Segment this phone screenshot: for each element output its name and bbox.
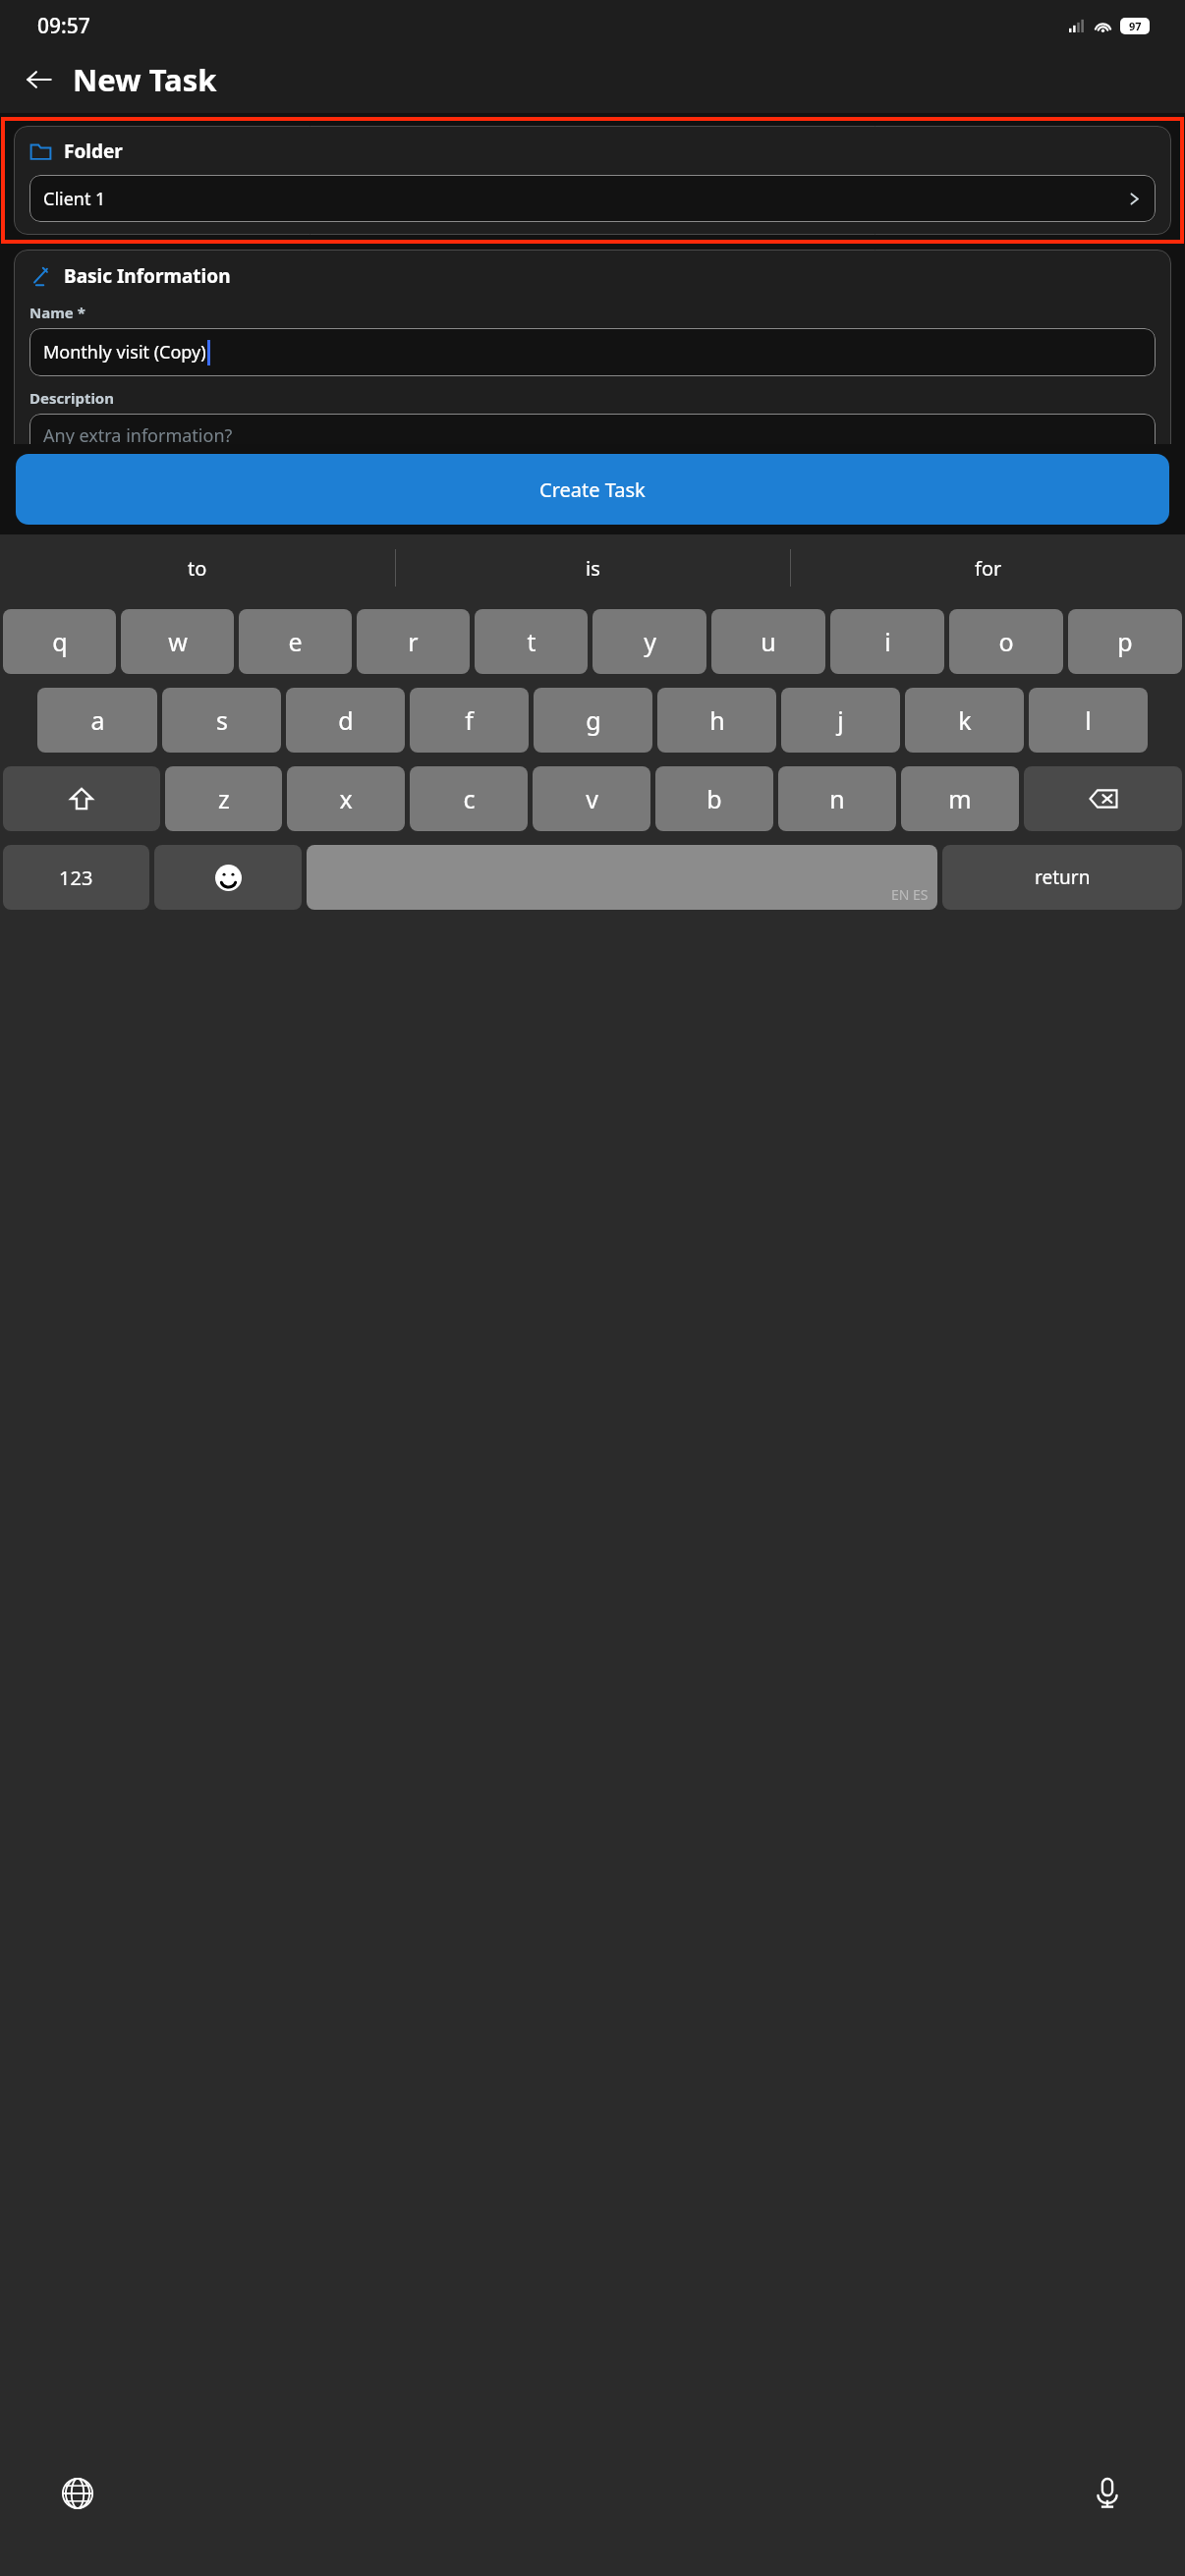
- button[interactable]: s: [162, 688, 281, 753]
- button[interactable]: Voice input: [1077, 2463, 1138, 2524]
- staticText: Description: [29, 388, 114, 408]
- staticText: y: [644, 625, 656, 658]
- button[interactable]: l: [1029, 688, 1148, 753]
- staticText: d: [338, 703, 354, 737]
- staticText: u: [761, 625, 776, 658]
- staticText: j: [837, 703, 844, 737]
- staticText: return: [1035, 865, 1091, 890]
- button[interactable]: Back: [14, 54, 65, 105]
- staticText: g: [586, 703, 601, 737]
- staticText: 123: [59, 865, 93, 891]
- staticText: Create Task: [539, 476, 646, 503]
- button[interactable]: d: [286, 688, 405, 753]
- button[interactable]: k: [905, 688, 1024, 753]
- button[interactable]: f: [410, 688, 529, 753]
- staticText: k: [958, 703, 972, 737]
- button[interactable]: Client 1: [29, 175, 1156, 222]
- button[interactable]: Any extra information?: [29, 414, 1156, 501]
- staticText: b: [706, 782, 722, 815]
- staticText: c: [463, 782, 476, 815]
- staticText: v: [586, 782, 598, 815]
- button[interactable]: for: [791, 534, 1185, 601]
- button[interactable]: h: [657, 688, 776, 753]
- button[interactable]: Create Task: [16, 454, 1169, 525]
- button[interactable]: b: [655, 766, 773, 831]
- button[interactable]: y: [592, 609, 706, 674]
- staticText: e: [288, 625, 303, 658]
- staticText: m: [948, 782, 972, 815]
- staticText: is: [586, 555, 600, 582]
- button[interactable]: Shift: [3, 766, 160, 831]
- button[interactable]: q: [3, 609, 116, 674]
- staticText: Monthly visit (Copy): [43, 340, 206, 364]
- staticText: 97: [1129, 19, 1142, 33]
- button[interactable]: x: [287, 766, 405, 831]
- staticText: i: [884, 625, 891, 658]
- button[interactable]: Change language: [47, 2463, 108, 2524]
- staticText: h: [709, 703, 725, 737]
- button[interactable]: m: [901, 766, 1019, 831]
- button[interactable]: Space: [307, 845, 937, 910]
- button[interactable]: z: [165, 766, 282, 831]
- button[interactable]: Monthly visit (Copy): [29, 328, 1156, 376]
- button[interactable]: t: [475, 609, 588, 674]
- staticText: for: [975, 555, 1002, 582]
- staticText: t: [527, 625, 536, 658]
- staticText: Folder: [64, 139, 123, 164]
- staticText: x: [339, 782, 353, 815]
- button[interactable]: w: [121, 609, 234, 674]
- staticText: EN ES: [891, 885, 929, 904]
- button[interactable]: n: [778, 766, 896, 831]
- button[interactable]: j: [781, 688, 900, 753]
- button[interactable]: i: [830, 609, 944, 674]
- staticText: Name *: [29, 303, 85, 322]
- staticText: z: [218, 782, 230, 815]
- staticText: to: [188, 555, 207, 582]
- staticText: New Task: [73, 59, 217, 100]
- staticText: w: [168, 625, 188, 658]
- button[interactable]: return: [942, 845, 1182, 910]
- staticText: s: [216, 703, 228, 737]
- staticText: a: [90, 703, 105, 737]
- button[interactable]: 123: [3, 845, 149, 910]
- button[interactable]: Backspace: [1024, 766, 1182, 831]
- button[interactable]: v: [533, 766, 650, 831]
- button[interactable]: is: [396, 534, 790, 601]
- button[interactable]: g: [534, 688, 652, 753]
- button[interactable]: Emoji: [154, 845, 302, 910]
- staticText: q: [52, 625, 68, 658]
- staticText: p: [1117, 625, 1133, 658]
- button[interactable]: p: [1068, 609, 1182, 674]
- button[interactable]: c: [410, 766, 528, 831]
- staticText: o: [998, 625, 1014, 658]
- button[interactable]: r: [357, 609, 470, 674]
- button[interactable]: a: [37, 688, 157, 753]
- button[interactable]: o: [949, 609, 1063, 674]
- button[interactable]: to: [0, 534, 395, 601]
- staticText: Any extra information?: [43, 423, 233, 448]
- button[interactable]: e: [239, 609, 352, 674]
- staticText: Basic Information: [64, 263, 231, 289]
- button[interactable]: u: [711, 609, 825, 674]
- staticText: 09:57: [37, 12, 90, 40]
- staticText: Client 1: [43, 187, 1127, 211]
- staticText: l: [1085, 703, 1092, 737]
- staticText: n: [829, 782, 845, 815]
- staticText: f: [465, 703, 474, 737]
- staticText: r: [408, 625, 419, 658]
